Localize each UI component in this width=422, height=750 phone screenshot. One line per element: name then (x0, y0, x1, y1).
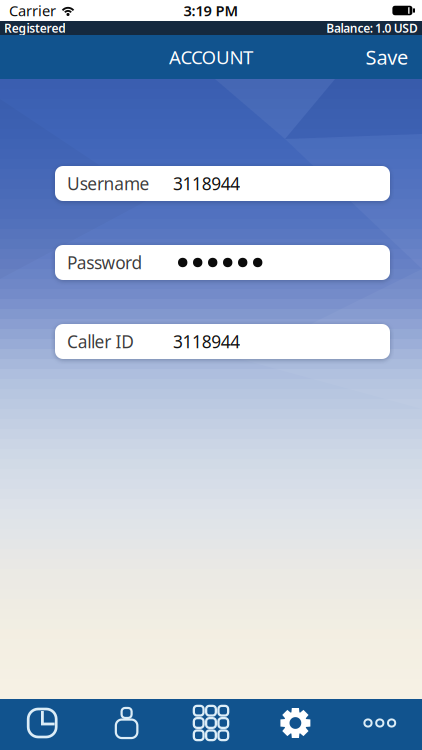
staticText: Registered (4, 20, 66, 36)
button[interactable]: Settings (253, 699, 338, 750)
staticText: Username (67, 172, 150, 195)
button[interactable]: Contacts (84, 699, 169, 750)
button[interactable]: Keypad (169, 699, 253, 750)
button[interactable]: Username (55, 166, 390, 201)
staticText: Password (67, 251, 143, 274)
staticText: Caller ID (67, 330, 134, 353)
staticText: Balance: 1.0 USD (326, 20, 418, 36)
button[interactable]: Recents (0, 699, 84, 750)
staticText: ACCOUNT (169, 45, 253, 69)
button[interactable]: More (338, 699, 422, 750)
staticText: 3118944 (173, 172, 240, 195)
staticText: 3:19 PM (183, 1, 238, 20)
staticText: 3118944 (173, 330, 240, 353)
staticText: Save (366, 44, 408, 70)
button[interactable]: Caller ID (55, 324, 390, 359)
button[interactable]: Save (366, 44, 422, 70)
staticText: Carrier (9, 1, 56, 20)
button[interactable]: Password (55, 245, 390, 280)
